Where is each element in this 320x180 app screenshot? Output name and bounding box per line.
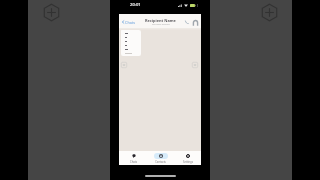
button[interactable]: Chats [119, 151, 147, 165]
button[interactable] [121, 30, 141, 56]
button[interactable]: Voice call [182, 17, 191, 26]
staticText: Contacts [155, 160, 166, 164]
button[interactable]: Chats [119, 14, 138, 28]
staticText: Settings [183, 160, 193, 164]
staticText: Recipient Name [145, 18, 176, 23]
staticText: last seen recently [152, 23, 170, 26]
button[interactable]: Settings [174, 151, 201, 165]
staticText: Chats [125, 20, 136, 25]
button[interactable]: Contacts [147, 151, 174, 165]
staticText: Chats [130, 160, 137, 164]
staticText: 20:01 [130, 2, 141, 8]
button[interactable]: Video call [191, 18, 200, 27]
